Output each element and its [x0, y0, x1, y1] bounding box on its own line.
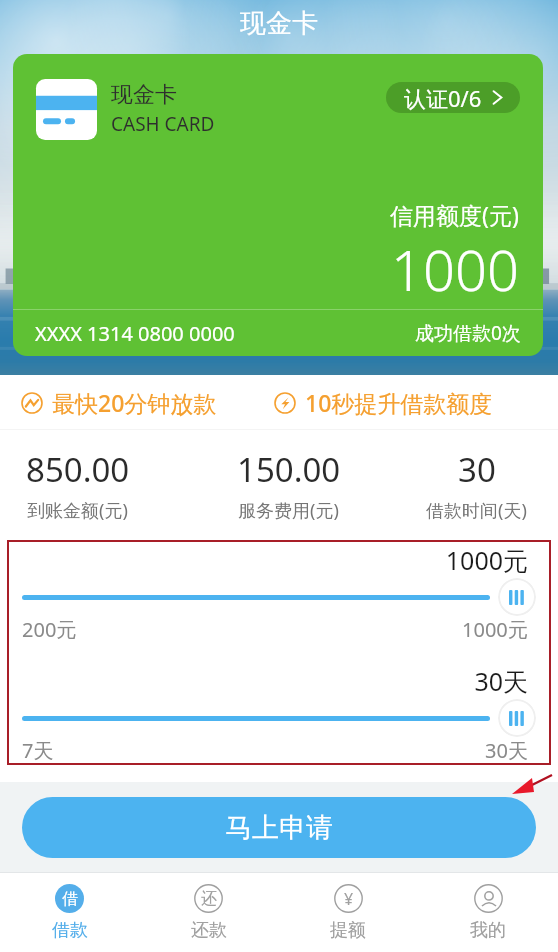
- staticText: 认证0/6: [404, 83, 482, 113]
- staticText: 服务费用(元): [238, 498, 339, 523]
- staticText: XXXX 1314 0800 0000: [35, 320, 235, 347]
- staticText: 最快20分钟放款: [52, 387, 217, 418]
- button[interactable]: 850.00: [15, 447, 140, 523]
- button[interactable]: Slider thumb: [498, 699, 536, 737]
- staticText: 马上申请: [225, 811, 333, 845]
- button[interactable]: 30: [414, 447, 539, 523]
- button[interactable]: 10秒提升借款额度: [274, 387, 493, 418]
- button[interactable]: ¥: [278, 873, 418, 952]
- button[interactable]: 还: [139, 873, 278, 952]
- button[interactable]: 认证0/6: [386, 82, 520, 113]
- staticText: 借款: [52, 919, 88, 942]
- staticText: 7天: [22, 737, 54, 764]
- staticText: 30天: [485, 737, 528, 764]
- button[interactable]: 马上申请: [22, 797, 536, 858]
- staticText: 借款时间(天): [426, 498, 527, 523]
- staticText: 1000元: [462, 616, 528, 643]
- button[interactable]: Slider thumb: [498, 578, 536, 616]
- staticText: CASH CARD: [111, 111, 215, 137]
- button[interactable]: 我的: [418, 873, 558, 952]
- staticText: 1000元: [22, 543, 528, 577]
- staticText: 我的: [470, 919, 506, 942]
- button[interactable]: 150.00: [226, 447, 351, 523]
- button[interactable]: 最快20分钟放款: [21, 387, 217, 418]
- button[interactable]: 借: [0, 873, 139, 952]
- staticText: 借: [62, 889, 78, 909]
- staticText: 10秒提升借款额度: [305, 387, 493, 418]
- staticText: 成功借款0次: [415, 320, 521, 346]
- staticText: 还款: [191, 919, 227, 942]
- staticText: 200元: [22, 616, 77, 643]
- staticText: 现金卡: [240, 7, 318, 40]
- button[interactable]: 现金卡: [13, 54, 543, 356]
- staticText: 现金卡: [111, 81, 177, 109]
- staticText: 30天: [22, 664, 528, 698]
- staticText: 信用额度(元): [390, 199, 519, 230]
- staticText: 150.00: [237, 447, 341, 492]
- staticText: 1000: [391, 231, 519, 307]
- staticText: 提额: [330, 919, 366, 942]
- staticText: 850.00: [26, 447, 130, 492]
- staticText: 到账金额(元): [27, 498, 128, 523]
- staticText: 还: [201, 889, 217, 909]
- staticText: ¥: [344, 888, 354, 910]
- staticText: 30: [458, 447, 496, 492]
